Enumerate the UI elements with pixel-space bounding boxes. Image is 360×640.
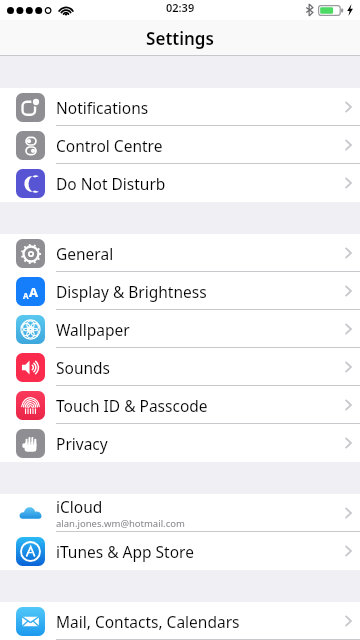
staticText: Control Centre: [56, 135, 163, 156]
staticText: Do Not Disturb: [56, 173, 166, 194]
staticText: General: [56, 243, 114, 264]
staticText: 02:39: [166, 0, 195, 15]
button[interactable]: Do Not Disturb: [0, 164, 360, 202]
staticText: A: [29, 283, 38, 301]
staticText: Settings: [146, 27, 214, 50]
button[interactable]: Touch ID & Passcode: [0, 386, 360, 424]
button[interactable]: A: [0, 272, 360, 310]
button[interactable]: Sounds: [0, 348, 360, 386]
staticText: Touch ID & Passcode: [56, 395, 208, 416]
staticText: Notifications: [56, 97, 149, 118]
staticText: iTunes & App Store: [56, 541, 194, 562]
button[interactable]: Notifications: [0, 88, 360, 126]
button[interactable]: Privacy: [0, 424, 360, 462]
staticText: Mail, Contacts, Calendars: [56, 611, 240, 632]
button[interactable]: iTunes & App Store: [0, 532, 360, 570]
button[interactable]: Control Centre: [0, 126, 360, 164]
button[interactable]: Wallpaper: [0, 310, 360, 348]
staticText: A: [23, 290, 29, 301]
staticText: Privacy: [56, 433, 108, 454]
button[interactable]: General: [0, 234, 360, 272]
staticText: Sounds: [56, 357, 111, 378]
button[interactable]: iCloud: [0, 494, 360, 532]
staticText: Wallpaper: [56, 319, 130, 340]
staticText: Display & Brightness: [56, 281, 207, 302]
staticText: iCloud: [56, 496, 103, 517]
staticText: alan.jones.wm@hotmail.com: [56, 517, 185, 530]
button[interactable]: Mail, Contacts, Calendars: [0, 602, 360, 640]
